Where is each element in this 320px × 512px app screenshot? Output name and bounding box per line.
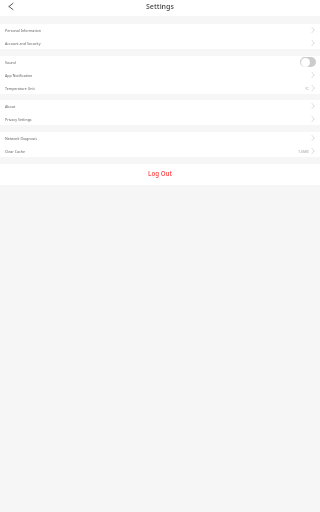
staticText: 1.6MB	[298, 149, 309, 154]
staticText: Privacy Settings	[5, 117, 32, 122]
staticText: Sound	[5, 60, 16, 65]
staticText: Clear Cache	[5, 149, 25, 154]
staticText: Temperature Unit	[5, 86, 35, 91]
button[interactable]: Clear Cache	[0, 145, 320, 157]
button[interactable]: Sound	[0, 56, 320, 69]
staticText: ℃	[305, 86, 309, 91]
staticText: Personal Information	[5, 28, 42, 33]
button[interactable]: Back	[4, 0, 17, 13]
button[interactable]: Account and Security	[0, 37, 320, 49]
staticText: App Notification	[5, 73, 33, 78]
staticText: Log Out	[148, 169, 173, 177]
button[interactable]: Temperature Unit	[0, 82, 320, 94]
staticText: About	[5, 104, 16, 109]
button[interactable]: Network Diagnosis	[0, 132, 320, 145]
button[interactable]: App Notification	[0, 69, 320, 82]
button[interactable]: Sound toggle	[300, 57, 316, 67]
button[interactable]: Privacy Settings	[0, 113, 320, 125]
staticText: Network Diagnosis	[5, 136, 37, 141]
button[interactable]: Personal Information	[0, 24, 320, 37]
button[interactable]: Log Out	[0, 164, 320, 185]
button[interactable]: About	[0, 100, 320, 113]
staticText: Settings	[146, 2, 174, 12]
staticText: Account and Security	[5, 41, 41, 46]
